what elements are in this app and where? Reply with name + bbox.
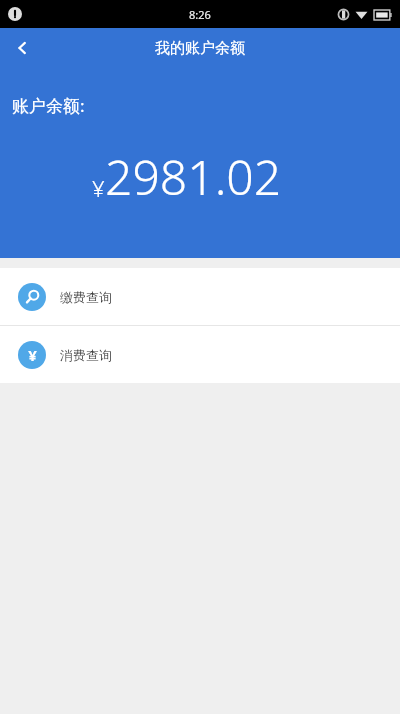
button[interactable]: Back <box>0 28 44 68</box>
staticText: 缴费查询 <box>60 289 112 305</box>
button[interactable]: ¥ <box>0 326 400 383</box>
staticText: ¥ <box>28 345 37 365</box>
staticText: 我的账户余额 <box>155 39 245 58</box>
button[interactable]: 缴费查询 <box>0 268 400 325</box>
staticText: 8:26 <box>189 7 211 22</box>
staticText: 消费查询 <box>60 347 112 363</box>
staticText: ¥ <box>92 173 105 203</box>
staticText: 2981.02 <box>105 144 282 209</box>
staticText: 账户余额: <box>12 94 85 117</box>
